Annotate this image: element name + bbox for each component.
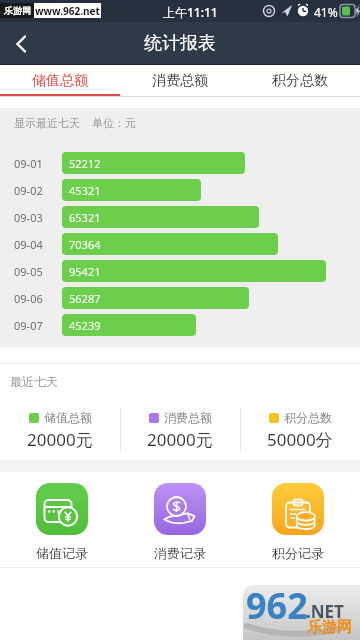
staticText: 最近七天 — [10, 374, 58, 389]
staticText: 09-06 — [14, 291, 43, 306]
staticText: 09-07 — [14, 318, 43, 333]
staticText: 储值总额 — [32, 72, 88, 90]
staticText: 45321 — [69, 183, 101, 198]
button[interactable]: 积分总数 — [240, 410, 360, 456]
button[interactable]: 消费总额 — [120, 65, 240, 97]
button[interactable]: 储值记录 — [24, 483, 100, 561]
staticText: 95421 — [69, 264, 101, 279]
button[interactable]: 储值总额 — [0, 65, 120, 97]
staticText: 消费总额 — [164, 410, 212, 425]
staticText: 积分总数 — [272, 72, 328, 90]
staticText: 20000元 — [27, 428, 93, 451]
staticText: 上午11:11 — [163, 4, 218, 20]
staticText: 积分总数 — [284, 410, 332, 425]
button[interactable]: 消费记录 — [142, 483, 218, 561]
staticText: 消费总额 — [152, 72, 208, 90]
staticText: 乐游网 — [307, 618, 352, 637]
button[interactable]: 积分总数 — [240, 65, 360, 97]
staticText: www.962.net — [35, 4, 100, 18]
staticText: 45239 — [69, 318, 101, 333]
staticText: 41% — [314, 4, 338, 20]
button[interactable]: 消费总额 — [120, 410, 240, 456]
staticText: 09-04 — [14, 237, 43, 252]
button[interactable] — [0, 22, 44, 65]
staticText: 962 — [246, 585, 308, 630]
staticText: 09-02 — [14, 183, 43, 198]
staticText: 消费记录 — [154, 545, 206, 561]
staticText: 50000分 — [267, 428, 333, 451]
staticText: 70364 — [69, 237, 101, 252]
staticText: .NET — [306, 600, 344, 623]
staticText: 乐游网 — [4, 5, 31, 16]
staticText: 单位：元 — [92, 116, 136, 130]
staticText: 09-05 — [14, 264, 43, 279]
staticText: 65321 — [69, 210, 101, 225]
staticText: 显示最近七天 — [14, 116, 80, 130]
staticText: 09-03 — [14, 210, 43, 225]
staticText: 统计报表 — [144, 32, 216, 55]
staticText: 储值总额 — [44, 410, 92, 425]
staticText: 56287 — [69, 291, 101, 306]
staticText: 20000元 — [147, 428, 213, 451]
staticText: 52212 — [69, 156, 101, 171]
staticText: 09-01 — [14, 156, 43, 171]
button[interactable]: 储值总额 — [0, 410, 120, 456]
staticText: 储值记录 — [36, 545, 88, 561]
button[interactable]: 积分记录 — [260, 483, 336, 561]
staticText: 积分记录 — [272, 545, 324, 561]
